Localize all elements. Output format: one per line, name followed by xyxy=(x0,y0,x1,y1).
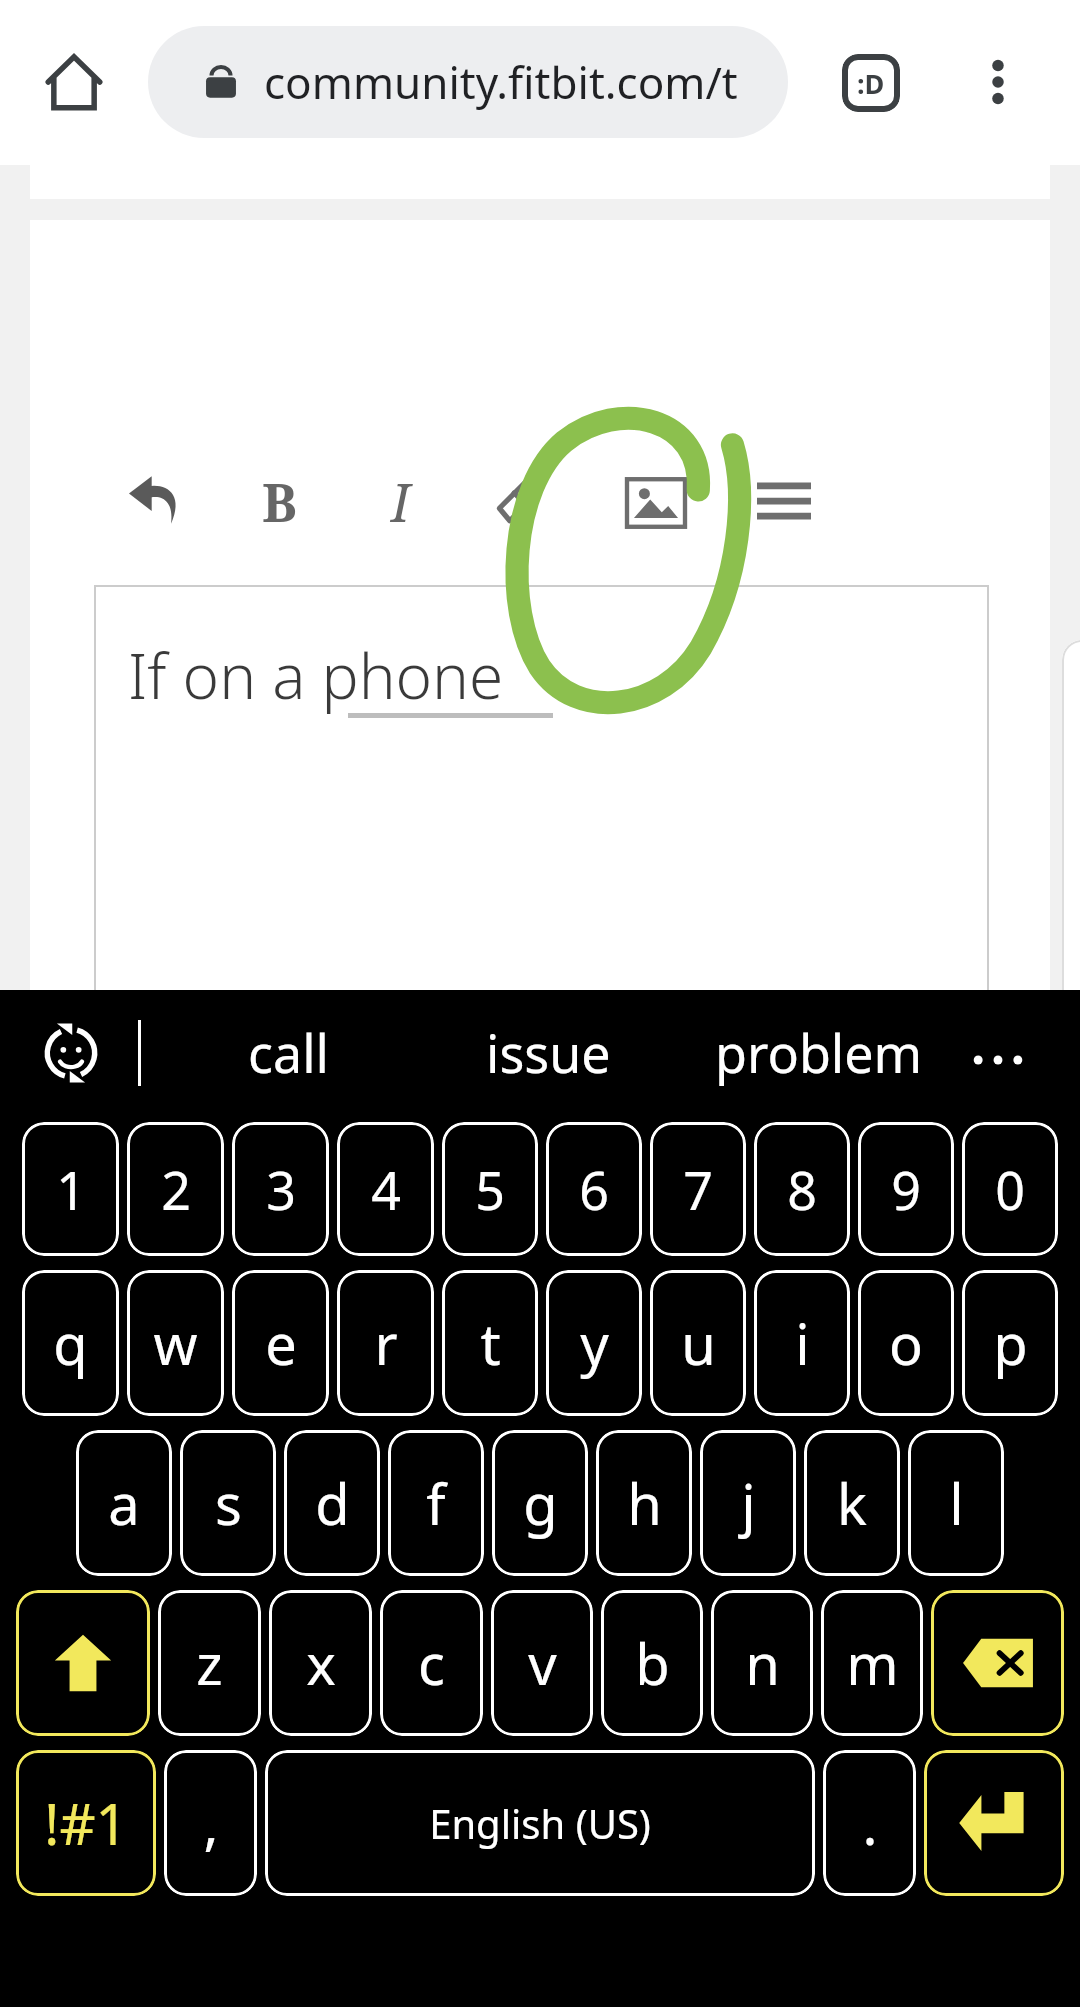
staticText: v xyxy=(528,1625,557,1701)
button[interactable]: q xyxy=(22,1270,119,1416)
staticText: b xyxy=(635,1625,670,1701)
staticText: English (US) xyxy=(429,1796,651,1850)
button[interactable]: Insert image xyxy=(606,453,706,553)
staticText: 3 xyxy=(266,1154,296,1225)
button[interactable]: y xyxy=(546,1270,642,1416)
button[interactable]: More options xyxy=(950,34,1046,130)
button[interactable]: g xyxy=(492,1430,588,1576)
staticText: t xyxy=(480,1305,501,1381)
button[interactable]: e xyxy=(232,1270,329,1416)
button[interactable]: Home xyxy=(24,32,124,132)
staticText: 1 xyxy=(56,1154,86,1225)
button[interactable]: , xyxy=(164,1750,257,1896)
button[interactable]: 1 xyxy=(22,1122,119,1256)
button[interactable]: 3 xyxy=(232,1122,329,1256)
staticText: z xyxy=(196,1625,223,1701)
staticText: j xyxy=(741,1465,756,1541)
button[interactable]: B xyxy=(233,455,325,547)
button[interactable]: h xyxy=(596,1430,692,1576)
button[interactable]: Undo xyxy=(110,453,202,545)
button[interactable]: Tabs xyxy=(828,40,914,126)
button[interactable]: community.fitbit.com/t xyxy=(148,26,788,138)
button[interactable]: 5 xyxy=(442,1122,538,1256)
button[interactable]: Shift xyxy=(16,1590,150,1736)
button[interactable]: a xyxy=(76,1430,172,1576)
button[interactable]: s xyxy=(180,1430,276,1576)
button[interactable]: English (US) xyxy=(265,1750,815,1896)
staticText: l xyxy=(949,1465,964,1541)
staticText: If on a phone xyxy=(128,633,504,717)
button[interactable]: l xyxy=(908,1430,1004,1576)
button[interactable]: 9 xyxy=(858,1122,954,1256)
button[interactable]: I xyxy=(355,455,447,547)
button[interactable]: Backspace xyxy=(931,1590,1064,1736)
staticText: issue xyxy=(486,1017,611,1088)
staticText: 9 xyxy=(891,1154,921,1225)
button[interactable]: More suggestions xyxy=(952,1014,1044,1106)
staticText: . xyxy=(862,1785,878,1861)
button[interactable]: m xyxy=(821,1590,923,1736)
button[interactable]: Enter xyxy=(924,1750,1064,1896)
button[interactable]: call xyxy=(188,990,388,1115)
button[interactable]: x xyxy=(269,1590,372,1736)
staticText: I xyxy=(391,466,411,537)
staticText: c xyxy=(418,1625,445,1701)
button[interactable]: j xyxy=(700,1430,796,1576)
button[interactable]: d xyxy=(284,1430,380,1576)
button[interactable]: Insert link xyxy=(470,455,562,547)
button[interactable]: 0 xyxy=(962,1122,1058,1256)
button[interactable]: Emoji xyxy=(32,1014,110,1092)
staticText: e xyxy=(265,1305,297,1381)
staticText: r xyxy=(374,1305,398,1381)
button[interactable]: 7 xyxy=(650,1122,746,1256)
button[interactable]: !#1 xyxy=(16,1750,156,1896)
staticText: call xyxy=(248,1017,329,1088)
staticText: 8 xyxy=(787,1154,817,1225)
staticText: , xyxy=(203,1785,219,1861)
staticText: w xyxy=(153,1305,198,1381)
button[interactable]: More formatting xyxy=(738,455,830,547)
staticText: h xyxy=(627,1465,662,1541)
staticText: d xyxy=(315,1465,350,1541)
button[interactable]: 6 xyxy=(546,1122,642,1256)
staticText: i xyxy=(795,1305,810,1381)
staticText: a xyxy=(108,1465,140,1541)
staticText: s xyxy=(215,1465,242,1541)
staticText: m xyxy=(846,1625,899,1701)
button[interactable]: f xyxy=(388,1430,484,1576)
button[interactable]: u xyxy=(650,1270,746,1416)
staticText: !#1 xyxy=(44,1785,128,1861)
staticText: o xyxy=(889,1305,923,1381)
staticText: 4 xyxy=(371,1154,401,1225)
button[interactable]: problem xyxy=(688,990,950,1115)
button[interactable]: 8 xyxy=(754,1122,850,1256)
staticText: community.fitbit.com/t xyxy=(264,52,738,112)
staticText: u xyxy=(681,1305,716,1381)
button[interactable]: b xyxy=(601,1590,703,1736)
button[interactable]: 4 xyxy=(337,1122,434,1256)
button[interactable]: n xyxy=(711,1590,813,1736)
staticText: x xyxy=(306,1625,336,1701)
staticText: :D xyxy=(857,65,885,102)
button[interactable]: p xyxy=(962,1270,1058,1416)
staticText: n xyxy=(745,1625,780,1701)
button[interactable]: issue xyxy=(438,990,658,1115)
staticText: 5 xyxy=(475,1154,505,1225)
button[interactable]: o xyxy=(858,1270,954,1416)
staticText: q xyxy=(53,1305,88,1381)
button[interactable]: t xyxy=(442,1270,538,1416)
button[interactable]: k xyxy=(804,1430,900,1576)
staticText: problem xyxy=(715,1017,923,1088)
staticText: 6 xyxy=(579,1154,609,1225)
button[interactable]: v xyxy=(491,1590,593,1736)
button[interactable]: z xyxy=(158,1590,261,1736)
button[interactable]: c xyxy=(380,1590,483,1736)
button[interactable]: 2 xyxy=(127,1122,224,1256)
button[interactable]: i xyxy=(754,1270,850,1416)
staticText: B xyxy=(262,466,297,537)
button[interactable]: w xyxy=(127,1270,224,1416)
button[interactable]: r xyxy=(337,1270,434,1416)
staticText: 7 xyxy=(683,1154,713,1225)
button[interactable]: . xyxy=(823,1750,916,1896)
staticText: y xyxy=(580,1305,609,1381)
